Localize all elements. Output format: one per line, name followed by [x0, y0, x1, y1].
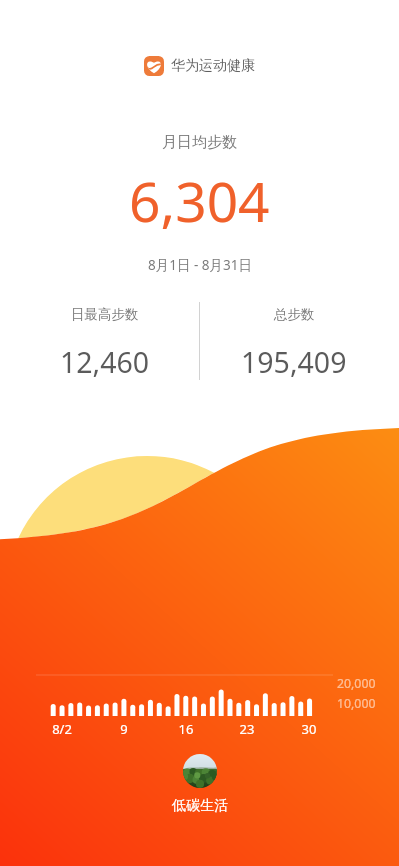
staticText: 10,000 [337, 695, 376, 712]
button[interactable]: 总步数 [200, 306, 388, 382]
button[interactable]: 华为运动健康 [144, 56, 255, 76]
staticText: 月日均步数 [162, 133, 237, 152]
staticText: 16 [166, 720, 206, 738]
button[interactable]: 日最高步数 [11, 306, 199, 382]
staticText: 总步数 [274, 306, 315, 323]
staticText: 20,000 [337, 675, 376, 692]
staticText: 9 [104, 720, 144, 738]
staticText: 30 [289, 720, 329, 738]
staticText: 日最高步数 [71, 306, 139, 323]
staticText: 低碳生活 [172, 797, 228, 815]
staticText: 8月1日 - 8月31日 [148, 256, 252, 274]
button[interactable]: 低碳生活 [183, 754, 217, 788]
staticText: 8/2 [42, 720, 82, 738]
staticText: 23 [227, 720, 267, 738]
staticText: 12,460 [60, 343, 150, 382]
staticText: 华为运动健康 [171, 57, 255, 75]
staticText: 195,409 [241, 343, 347, 382]
staticText: 6,304 [129, 163, 270, 238]
